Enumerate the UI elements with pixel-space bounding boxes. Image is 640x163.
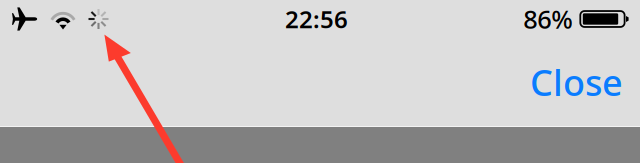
button[interactable]: Close [516,48,637,116]
staticText: 86% [523,2,573,36]
staticText: 22:56 [285,3,348,35]
staticText: Close [530,58,623,106]
